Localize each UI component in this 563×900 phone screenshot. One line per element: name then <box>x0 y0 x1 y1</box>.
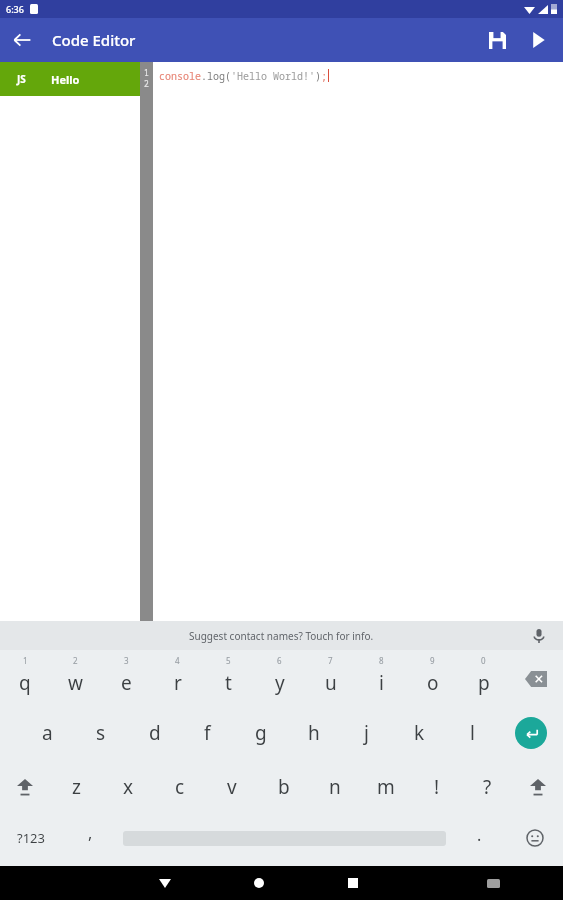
button[interactable]: h <box>287 706 340 760</box>
button[interactable]: 7 <box>305 652 356 706</box>
staticText: c <box>175 774 185 800</box>
staticText: ?123 <box>17 829 45 847</box>
staticText: ? <box>483 774 492 800</box>
staticText: h <box>308 720 320 746</box>
staticText: z <box>72 774 81 800</box>
staticText: 8 <box>379 655 384 666</box>
staticText: j <box>364 720 369 746</box>
staticText: console.log('Hello World!'); <box>159 69 327 83</box>
staticText: 3 <box>124 655 129 666</box>
button[interactable]: j <box>340 706 393 760</box>
button[interactable]: d <box>128 706 181 760</box>
staticText: i <box>379 670 384 696</box>
button[interactable]: b <box>258 760 309 814</box>
staticText: p <box>478 670 490 696</box>
button[interactable]: 9 <box>407 652 458 706</box>
button[interactable]: . <box>451 814 507 862</box>
button[interactable]: g <box>234 706 287 760</box>
staticText: r <box>174 670 182 696</box>
staticText: Code Editor <box>52 30 136 50</box>
button[interactable]: Voice input <box>527 624 551 648</box>
staticText: . <box>477 824 482 846</box>
staticText: Hello <box>51 72 80 87</box>
staticText: u <box>325 670 337 696</box>
staticText: q <box>19 670 31 696</box>
button[interactable]: Save <box>475 18 519 62</box>
staticText: w <box>68 670 83 696</box>
button[interactable]: Switch keyboard <box>476 866 510 900</box>
staticText: e <box>121 670 132 696</box>
button[interactable]: x <box>102 760 154 814</box>
button[interactable]: ? <box>462 760 513 814</box>
staticText: , <box>88 822 93 844</box>
staticText: 2 <box>73 655 78 666</box>
button[interactable]: v <box>206 760 258 814</box>
staticText: 2 <box>144 78 149 89</box>
staticText: g <box>255 720 267 746</box>
staticText: 7 <box>328 655 333 666</box>
staticText: m <box>377 774 395 800</box>
button[interactable]: Home <box>242 866 276 900</box>
staticText: JS <box>17 72 26 86</box>
staticText: 6 <box>277 655 282 666</box>
staticText: 5 <box>226 655 231 666</box>
staticText: b <box>278 774 290 800</box>
staticText: x <box>123 774 134 800</box>
button[interactable]: k <box>393 706 446 760</box>
button[interactable]: ! <box>411 760 462 814</box>
button[interactable]: JS <box>0 62 140 96</box>
staticText: l <box>470 720 475 746</box>
button[interactable]: Emoji <box>507 814 563 862</box>
staticText: a <box>42 720 53 746</box>
button[interactable]: m <box>360 760 411 814</box>
button[interactable]: Space <box>118 814 451 862</box>
button[interactable]: l <box>446 706 499 760</box>
staticText: 9 <box>430 655 435 666</box>
button[interactable]: a <box>20 706 74 760</box>
button[interactable]: 3 <box>101 652 152 706</box>
button[interactable]: 0 <box>458 652 509 706</box>
staticText: 1 <box>23 655 28 666</box>
staticText: 1 <box>144 67 149 78</box>
staticText: d <box>149 720 161 746</box>
button[interactable]: Hide keyboard <box>148 866 182 900</box>
button[interactable]: 1 <box>0 652 50 706</box>
button[interactable]: 6 <box>254 652 305 706</box>
staticText: k <box>414 720 425 746</box>
staticText: v <box>227 774 237 800</box>
button[interactable]: 5 <box>203 652 254 706</box>
staticText: f <box>204 720 211 746</box>
staticText: Suggest contact names? Touch for info. <box>189 629 374 643</box>
button[interactable]: s <box>74 706 128 760</box>
button[interactable]: Enter <box>499 706 563 760</box>
button[interactable]: f <box>181 706 234 760</box>
button[interactable]: 2 <box>50 652 101 706</box>
button[interactable]: 4 <box>152 652 203 706</box>
staticText: n <box>329 774 341 800</box>
staticText: y <box>275 670 285 696</box>
button[interactable]: Recents <box>336 866 370 900</box>
staticText: 6:36 <box>6 3 24 15</box>
button[interactable]: , <box>62 814 118 862</box>
staticText: o <box>427 670 439 696</box>
button[interactable]: z <box>50 760 102 814</box>
staticText: 4 <box>175 655 180 666</box>
button[interactable]: Suggest contact names? Touch for info. <box>0 621 563 650</box>
staticText: s <box>96 720 106 746</box>
button[interactable]: Shift <box>0 760 50 814</box>
button[interactable]: Delete <box>509 652 563 706</box>
button[interactable]: Back <box>0 18 44 62</box>
button[interactable]: Shift <box>513 760 563 814</box>
button[interactable]: ?123 <box>0 814 62 862</box>
staticText: t <box>225 670 232 696</box>
button[interactable]: 8 <box>356 652 407 706</box>
button[interactable]: Run <box>519 18 557 62</box>
staticText: 0 <box>481 655 486 666</box>
button[interactable]: n <box>309 760 360 814</box>
button[interactable]: c <box>154 760 206 814</box>
staticText: ! <box>434 774 440 800</box>
